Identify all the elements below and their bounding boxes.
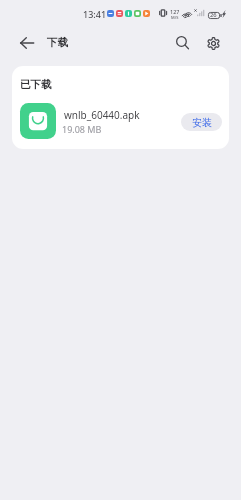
button[interactable]: [12, 96, 229, 144]
staticText: 下载: [47, 36, 68, 49]
staticText: 26: [210, 11, 217, 19]
staticText: wnlb_60440.apk: [64, 108, 140, 122]
staticText: 安装: [192, 116, 212, 129]
staticText: M/S: [171, 15, 179, 20]
button[interactable]: Search: [169, 29, 195, 55]
staticText: 19.08 MB: [62, 123, 102, 135]
button[interactable]: Settings: [200, 30, 226, 56]
staticText: 127: [170, 8, 179, 15]
button[interactable]: Back: [14, 30, 40, 56]
staticText: 13:41: [83, 8, 107, 20]
staticText: 已下载: [20, 78, 52, 91]
button[interactable]: 安装: [181, 113, 222, 131]
